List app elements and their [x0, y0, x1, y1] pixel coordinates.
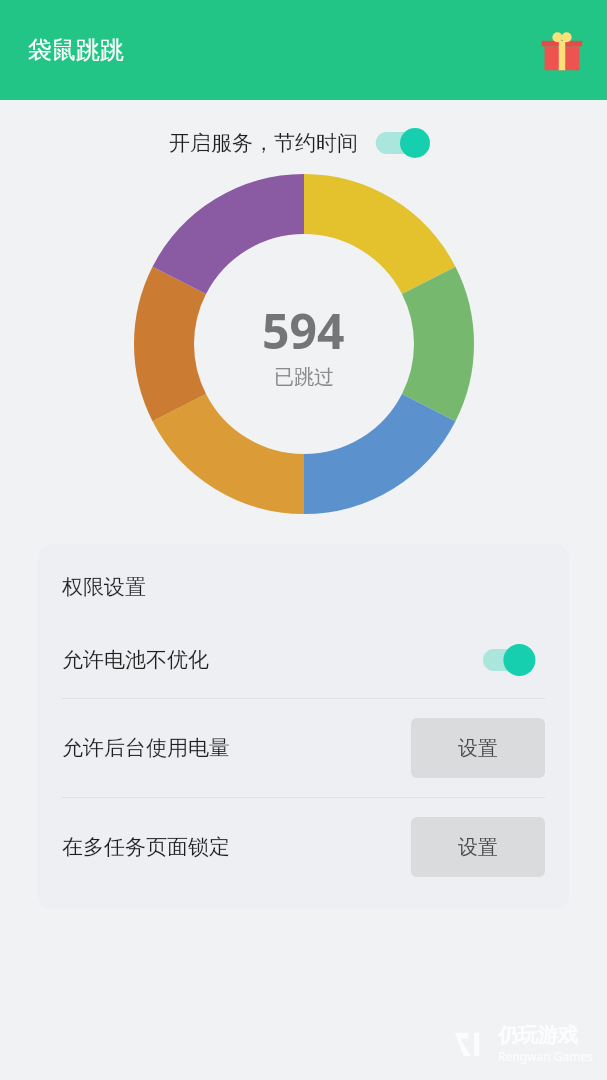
button[interactable]: 允许电池不优化 — [62, 622, 545, 698]
staticText: 权限设置 — [62, 574, 146, 600]
staticText: 在多任务页面锁定 — [62, 834, 230, 860]
staticText: 设置 — [458, 736, 498, 761]
staticText: 开启服务，节约时间 — [169, 130, 358, 156]
button[interactable]: 设置 — [411, 718, 545, 778]
button[interactable]: 开启服务，节约时间 — [0, 122, 607, 164]
staticText: 仍玩游戏 — [498, 1023, 578, 1048]
button[interactable]: Gift — [535, 23, 589, 77]
button[interactable]: 设置 — [411, 817, 545, 877]
staticText: 允许电池不优化 — [62, 647, 209, 673]
staticText: 已跳过 — [274, 365, 334, 390]
staticText: 允许后台使用电量 — [62, 735, 230, 761]
staticText: 594 — [262, 298, 345, 363]
staticText: 设置 — [458, 835, 498, 860]
staticText: 袋鼠跳跳 — [28, 35, 124, 65]
staticText: Rengwan Games — [498, 1048, 593, 1064]
